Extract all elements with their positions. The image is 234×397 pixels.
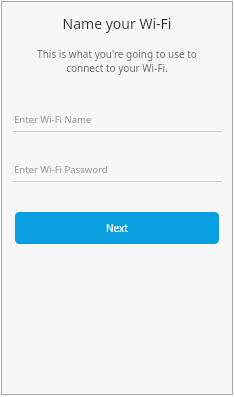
button[interactable]: Next: [15, 212, 219, 244]
staticText: Enter Wi-Fi Name: [14, 113, 92, 126]
staticText: Name your Wi-Fi: [1, 14, 233, 33]
button[interactable]: Enter Wi-Fi Password: [13, 163, 222, 182]
staticText: Next: [106, 221, 128, 235]
staticText: This is what you're going to use to conn…: [1, 47, 233, 75]
button[interactable]: Enter Wi-Fi Name: [13, 113, 222, 132]
staticText: Enter Wi-Fi Password: [14, 163, 108, 176]
